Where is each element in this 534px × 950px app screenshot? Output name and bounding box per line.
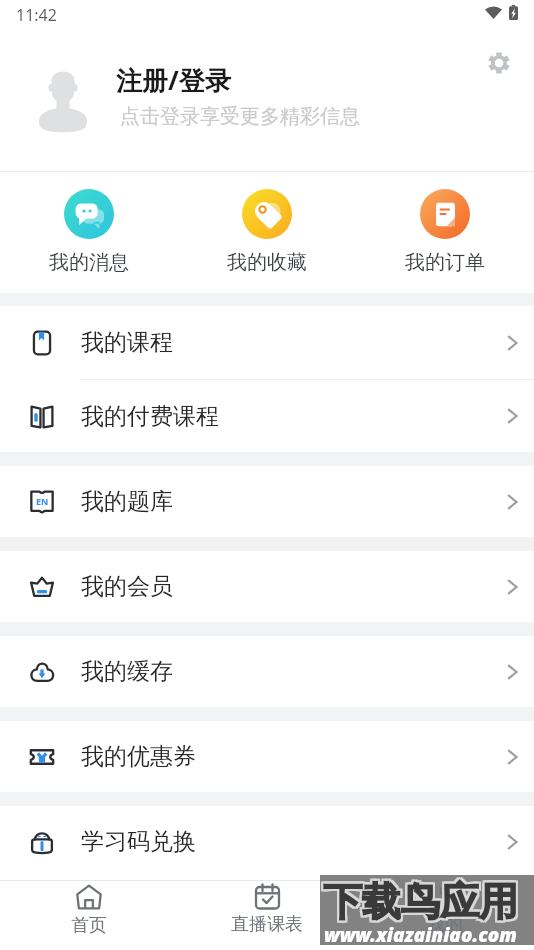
button[interactable]: 我的会员 (0, 551, 534, 622)
staticText: www.xiazainiao.com (324, 922, 517, 948)
button[interactable]: 我的收藏 (209, 178, 325, 278)
staticText: 我的会员 (81, 572, 173, 601)
staticText: 下载鸟应用 (321, 875, 516, 924)
staticText: 学习码兑换 (81, 827, 196, 856)
button[interactable]: 我的消息 (31, 178, 147, 278)
staticText: 我的付费课程 (81, 402, 219, 431)
button[interactable]: 我的订单 (387, 178, 503, 278)
staticText: 11:42 (16, 4, 57, 26)
staticText: 我的消息 (49, 250, 129, 275)
button[interactable]: 我的课程 (0, 306, 534, 379)
staticText: 点击登录享受更多精彩信息 (120, 104, 360, 129)
staticText: 下载鸟应用 (321, 879, 516, 928)
staticText: 我的优惠券 (81, 742, 196, 771)
staticText: 下载鸟应用 (323, 875, 518, 924)
button[interactable]: 直播课表 (207, 881, 327, 950)
staticText: 注册/登录 (116, 62, 231, 98)
staticText: 下载鸟应用 (323, 877, 518, 926)
button[interactable]: 学习码兑换 (0, 806, 534, 877)
staticText: 下载鸟应用 (325, 875, 520, 924)
staticText: 我的题库 (81, 487, 173, 516)
button[interactable]: Settings (477, 41, 521, 85)
staticText: EN (36, 495, 49, 507)
button[interactable]: 注册/登录 (0, 36, 534, 171)
staticText: 下载鸟应用 (321, 877, 516, 926)
staticText: 我的课程 (81, 328, 173, 357)
staticText: 下载鸟应用 (325, 879, 520, 928)
button[interactable]: 我的缓存 (0, 636, 534, 707)
button[interactable]: 我的 (385, 881, 505, 950)
staticText: 首页 (71, 914, 107, 937)
button[interactable]: 我的优惠券 (0, 721, 534, 792)
staticText: 下载鸟应用 (323, 879, 518, 928)
staticText: 我的收藏 (227, 250, 307, 275)
button[interactable]: EN (0, 466, 534, 537)
staticText: 直播课表 (231, 913, 303, 936)
staticText: 我的 (427, 913, 463, 936)
staticText: 我的缓存 (81, 657, 173, 686)
button[interactable]: 我的付费课程 (0, 380, 534, 452)
staticText: 下载鸟应用 (325, 877, 520, 926)
staticText: 我的订单 (405, 250, 485, 275)
button[interactable]: 首页 (29, 881, 149, 950)
